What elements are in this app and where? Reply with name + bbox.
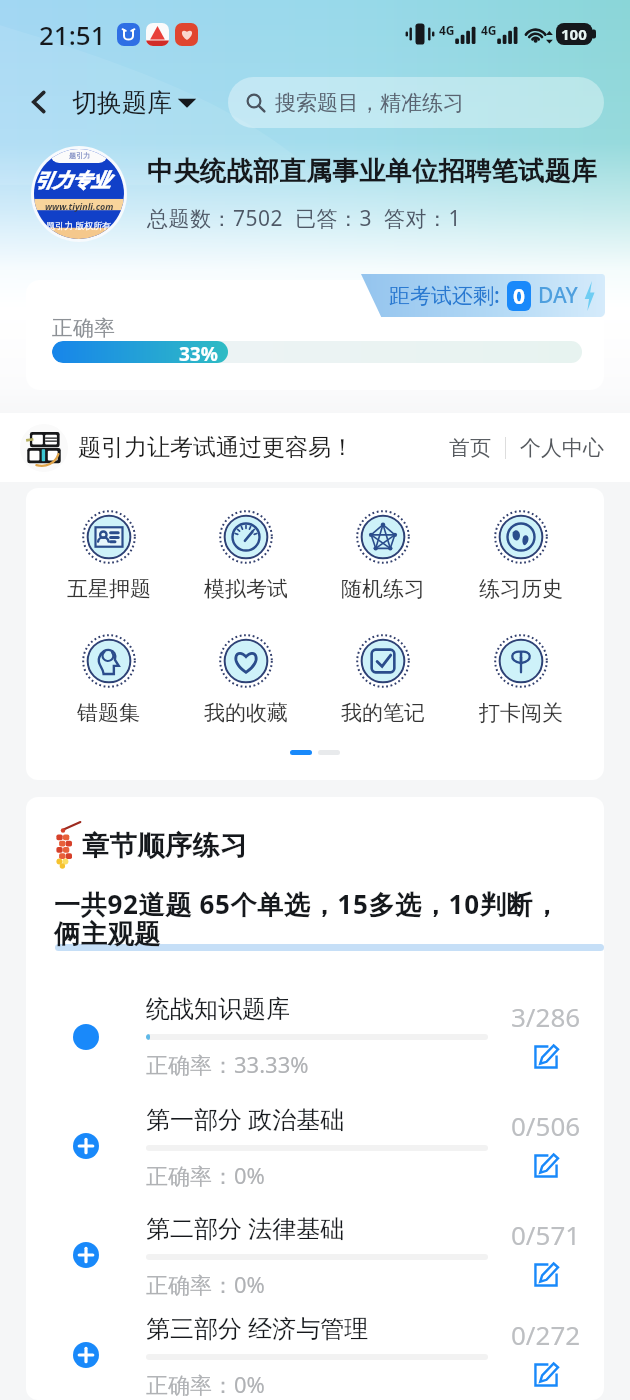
staticText: 3/286 [511,999,581,1034]
staticText: 中央统战部直属事业单位招聘笔试题库 [147,155,598,188]
button[interactable]: 切换题库 [72,87,197,118]
staticText: 模拟考试 [204,576,288,602]
staticText: 五星押题 [67,576,151,602]
staticText: 21:51 [39,17,106,52]
button[interactable]: 打卡闯关 [452,634,590,726]
button[interactable]: Edit [529,1358,563,1392]
staticText: 章节顺序练习 [82,829,248,863]
staticText: 正确率 [52,315,115,341]
button[interactable]: 练习历史 [452,510,590,602]
button[interactable]: 错题集 [40,634,177,726]
staticText: 100 [561,24,587,44]
staticText: 打卡闯关 [479,700,563,726]
staticText: 4G [439,22,455,38]
staticText: 0/272 [511,1317,581,1352]
staticText: 随机练习 [341,576,425,602]
button[interactable]: Edit [529,1258,563,1292]
staticText: 第三部分 经济与管理 [146,1311,369,1344]
staticText: www.tiyinli.com [45,200,114,212]
staticText: 统战知识题库 [146,994,290,1024]
button[interactable]: Edit [529,1149,563,1183]
staticText: 正确率：33.33% [146,1049,309,1079]
staticText: 第二部分 法律基础 [146,1211,345,1244]
staticText: 我的笔记 [341,700,425,726]
button[interactable]: 第一部分 政治基础 [26,1091,604,1200]
staticText: 题引力让考试通过更容易！ [78,433,354,462]
button[interactable]: Back [16,79,62,125]
button[interactable]: 我的笔记 [314,634,452,726]
button[interactable]: 个人中心 [520,435,604,461]
staticText: 正确率：0% [146,1369,265,1399]
staticText: 0/571 [511,1217,581,1252]
staticText: 练习历史 [479,576,563,602]
staticText: 总题数：7502 已答：3 答对：1 [147,204,461,233]
staticText: 一共92道题 65个单选，15多选，10判断，俩主观题 [54,886,577,951]
staticText: 我的收藏 [204,700,288,726]
button[interactable]: 我的收藏 [177,634,314,726]
button[interactable]: 模拟考试 [177,510,314,602]
staticText: DAY [538,281,578,310]
staticText: 距考试还剩: [389,281,500,310]
staticText: 题引力 版权所有 [46,219,112,231]
staticText: 引力专业题 [34,169,124,193]
button[interactable]: 搜索题目，精准练习 [228,77,604,128]
button[interactable]: 统战知识题库 [26,982,604,1091]
staticText: 0/506 [511,1108,581,1143]
button[interactable]: 首页 [449,435,491,461]
staticText: 4G [481,22,497,38]
staticText: 33% [179,341,218,363]
staticText: 正确率：0% [146,1160,265,1190]
staticText: 0 [513,282,526,311]
button[interactable]: 随机练习 [314,510,452,602]
staticText: 搜索题目，精准练习 [275,90,464,116]
button[interactable]: 第二部分 法律基础 [26,1200,604,1309]
staticText: 正确率：0% [146,1269,265,1299]
button[interactable]: 五星押题 [40,510,177,602]
button[interactable]: 第三部分 经济与管理 [26,1309,604,1400]
staticText: 题引力 [69,151,90,160]
staticText: 错题集 [77,700,140,726]
staticText: 切换题库 [72,87,172,118]
button[interactable]: Edit [529,1040,563,1074]
staticText: 第一部分 政治基础 [146,1102,345,1135]
